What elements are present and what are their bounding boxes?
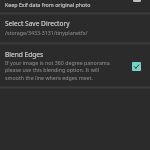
button[interactable]: Keep Exif data from original photo [0,0,150,13]
staticText: /storage/3433-3131/tinyplanetfx/ [5,29,88,36]
staticText: If your image is not 360 degree panorama… [5,59,117,82]
button[interactable]: Blend Edges [0,44,150,87]
staticText: Select Save Directory [5,19,70,28]
staticText: Keep Exif data from original photo [5,1,91,8]
button[interactable]: Select Save Directory [0,14,150,43]
staticText: Blend Edges [5,50,44,59]
button[interactable]: Blend Edges checkbox [132,62,141,71]
